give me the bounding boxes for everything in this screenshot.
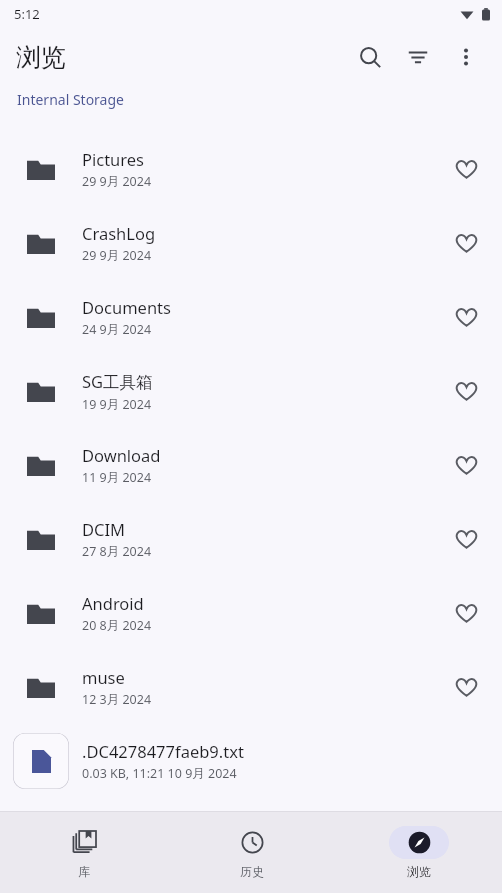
staticText: 11 9月 2024: [82, 469, 152, 486]
button[interactable]: Favorite: [430, 132, 502, 206]
button[interactable]: muse: [0, 650, 502, 724]
button[interactable]: SG工具箱: [0, 354, 502, 428]
button[interactable]: 浏览: [335, 812, 502, 893]
button[interactable]: Favorite: [430, 502, 502, 576]
button[interactable]: Favorite: [430, 428, 502, 502]
staticText: 20 8月 2024: [82, 617, 152, 634]
staticText: 5:12: [14, 5, 40, 23]
staticText: 0.03 KB, 11:21 10 9月 2024: [82, 765, 237, 782]
staticText: 29 9月 2024: [82, 247, 152, 264]
button[interactable]: Favorite: [430, 280, 502, 354]
staticText: DCIM: [82, 518, 126, 540]
button[interactable]: Favorite: [430, 354, 502, 428]
button[interactable]: Internal Storage: [0, 86, 502, 112]
button[interactable]: Android: [0, 576, 502, 650]
staticText: .DC4278477faeb9.txt: [82, 740, 244, 762]
button[interactable]: 库: [0, 812, 168, 893]
button[interactable]: More options: [442, 33, 490, 81]
staticText: Documents: [82, 296, 171, 318]
staticText: Internal Storage: [17, 90, 124, 109]
button[interactable]: Favorite: [430, 576, 502, 650]
button[interactable]: Documents: [0, 280, 502, 354]
button[interactable]: Favorite: [430, 206, 502, 280]
staticText: muse: [82, 666, 125, 688]
button[interactable]: Download: [0, 428, 502, 502]
staticText: CrashLog: [82, 222, 156, 244]
button[interactable]: .DC4278477faeb9.txt: [0, 724, 502, 798]
button[interactable]: CrashLog: [0, 206, 502, 280]
staticText: 27 8月 2024: [82, 543, 152, 560]
staticText: Pictures: [82, 148, 145, 170]
staticText: 24 9月 2024: [82, 321, 152, 338]
button[interactable]: Favorite: [430, 650, 502, 724]
staticText: 浏览: [16, 42, 66, 73]
staticText: SG工具箱: [82, 370, 153, 393]
staticText: 12 3月 2024: [82, 691, 152, 708]
staticText: Download: [82, 444, 161, 466]
button[interactable]: 历史: [168, 812, 335, 893]
button[interactable]: Pictures: [0, 132, 502, 206]
button[interactable]: DCIM: [0, 502, 502, 576]
staticText: 29 9月 2024: [82, 173, 152, 190]
staticText: 历史: [240, 864, 264, 879]
button[interactable]: Search: [346, 33, 394, 81]
staticText: 19 9月 2024: [82, 396, 152, 413]
staticText: 库: [78, 864, 90, 879]
staticText: Android: [82, 592, 144, 614]
button[interactable]: Sort: [394, 33, 442, 81]
staticText: 浏览: [407, 864, 431, 879]
